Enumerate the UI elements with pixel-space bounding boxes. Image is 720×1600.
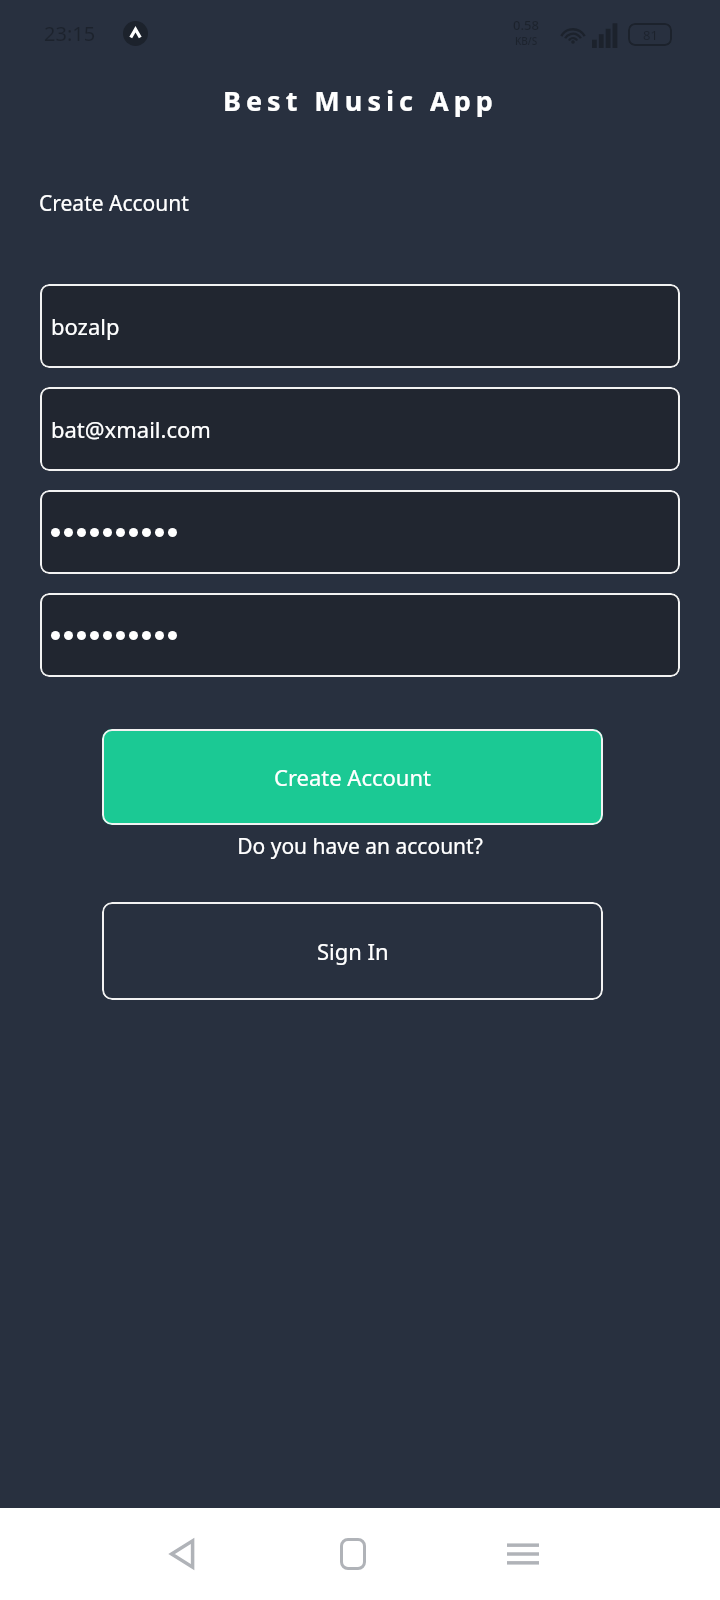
button[interactable]: Create Account xyxy=(102,729,603,825)
staticText: Do you have an account? xyxy=(237,832,483,861)
staticText: bozalp xyxy=(51,311,120,341)
button[interactable]: bozalp xyxy=(40,284,680,368)
button[interactable]: bat@xmail.com xyxy=(40,387,680,471)
staticText: KB/S xyxy=(515,34,538,48)
staticText: Best Music App xyxy=(223,82,498,119)
staticText: bat@xmail.com xyxy=(51,414,211,444)
button[interactable]: Home xyxy=(313,1514,393,1594)
button[interactable] xyxy=(40,593,680,677)
staticText: Sign In xyxy=(317,936,389,966)
staticText: 0.58 xyxy=(513,16,539,34)
staticText: 81 xyxy=(643,26,658,44)
staticText: Create Account xyxy=(39,189,189,218)
button[interactable]: Back xyxy=(143,1514,223,1594)
staticText: 23:15 xyxy=(44,20,96,47)
staticText: Create Account xyxy=(274,762,431,792)
button[interactable] xyxy=(40,490,680,574)
button[interactable]: Sign In xyxy=(102,902,603,1000)
button[interactable]: Recent apps xyxy=(483,1514,563,1594)
